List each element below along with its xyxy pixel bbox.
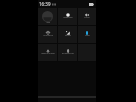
- button[interactable]: SOUND: [78, 8, 96, 25]
- staticText: BLUETOOTH OFF: [62, 52, 74, 54]
- button[interactable]: EXPAND: [58, 26, 77, 43]
- button[interactable]: Profile: [38, 8, 57, 25]
- staticText: SOUND: [84, 16, 90, 18]
- button[interactable]: TORCH: [78, 26, 96, 43]
- staticText: AEROPLANE MODE: [41, 52, 55, 54]
- staticText: BRIGHTNESS: [63, 16, 73, 18]
- staticText: 16:39: [39, 1, 51, 7]
- staticText: AUTO ROTATE: [43, 34, 53, 36]
- staticText: TORCH: [85, 34, 90, 36]
- button[interactable]: AEROPLANE MODE: [38, 44, 57, 61]
- button[interactable]: AUTO ROTATE: [38, 26, 57, 43]
- staticText: EXPAND: [65, 34, 71, 36]
- button[interactable]: BRIGHTNESS: [58, 8, 77, 25]
- staticText: USER: [46, 21, 50, 23]
- button[interactable]: BLUETOOTH OFF: [58, 44, 77, 61]
